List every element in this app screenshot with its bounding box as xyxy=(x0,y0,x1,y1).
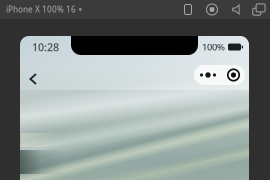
staticText: ▾ xyxy=(78,6,81,13)
button[interactable]: Home xyxy=(200,2,224,17)
staticText: iPhone X 100% 16 xyxy=(6,4,76,15)
button[interactable]: Device xyxy=(176,2,200,17)
button[interactable]: Back xyxy=(25,62,51,88)
button[interactable]: iPhone X 100% 16 xyxy=(0,0,81,19)
staticText: 10:28 xyxy=(32,40,59,54)
button[interactable]: Volume xyxy=(224,2,248,17)
button[interactable]: Record xyxy=(222,65,245,85)
staticText: 100% xyxy=(202,41,225,53)
button[interactable]: More options xyxy=(194,65,222,85)
button[interactable]: Windows xyxy=(248,2,270,17)
